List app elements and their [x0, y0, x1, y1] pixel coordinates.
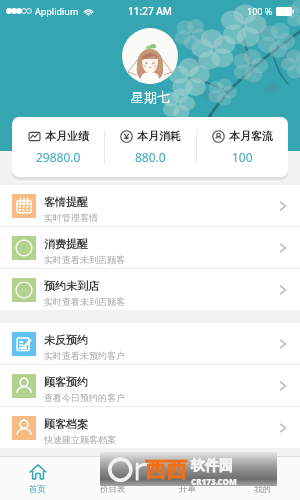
staticText: 实时管理客情	[44, 212, 98, 223]
staticText: 本月业绩	[45, 129, 89, 143]
staticText: 实时查看未预约客户	[44, 350, 125, 361]
button[interactable]: 首页	[0, 457, 75, 500]
staticText: 星期七	[131, 89, 170, 105]
staticText: 100 %	[247, 5, 273, 17]
staticText: 未反预约	[44, 333, 88, 347]
staticText: 预约未到店	[44, 279, 99, 293]
button[interactable]: 价目表	[75, 457, 150, 500]
staticText: 29880.0	[36, 149, 81, 165]
staticText: 客情提醒	[44, 195, 88, 209]
button[interactable]: 预约未到店	[0, 269, 300, 310]
staticText: 实时查看未到店顾客	[44, 254, 125, 265]
button[interactable]: 本月业绩	[12, 117, 104, 177]
staticText: 11:27 AM	[128, 4, 172, 18]
button[interactable]: 未反预约	[0, 323, 300, 364]
staticText: 查看今日预约的客户	[44, 392, 125, 403]
button[interactable]: 消费提醒	[0, 227, 300, 268]
staticText: 开单	[179, 484, 196, 495]
button[interactable]: 开单	[150, 457, 225, 500]
staticText: 本月客流	[229, 129, 273, 143]
staticText: 价目表	[100, 484, 126, 495]
staticText: 880.0	[135, 149, 166, 165]
staticText: 本月消耗	[137, 129, 181, 143]
staticText: CR173.COM	[191, 476, 237, 486]
button[interactable]: 本月客流	[197, 117, 288, 177]
staticText: 顾客预约	[44, 375, 88, 389]
staticText: 西西	[145, 457, 187, 483]
staticText: 我的	[254, 484, 271, 495]
staticText: 顾客档案	[44, 417, 88, 431]
staticText: 快速建立顾客档案	[44, 434, 116, 445]
staticText: 消费提醒	[44, 237, 88, 251]
button[interactable]: 顾客预约	[0, 365, 300, 406]
button[interactable]: 顾客档案	[0, 407, 300, 448]
staticText: 实时查看未到店顾客	[44, 296, 125, 307]
button[interactable]: 客情提醒	[0, 185, 300, 226]
staticText: 首页	[29, 484, 46, 495]
button[interactable]: 本月消耗	[105, 117, 196, 177]
staticText: Applidium	[35, 5, 79, 17]
button[interactable]: 我的	[225, 457, 300, 500]
staticText: 软件园	[191, 457, 233, 475]
staticText: 100	[232, 149, 253, 165]
